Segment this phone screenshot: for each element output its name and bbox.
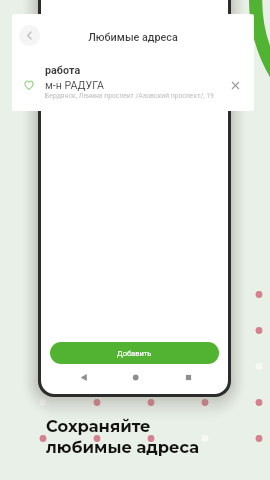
staticText: любимые адреса	[46, 437, 200, 457]
staticText: работа	[45, 64, 81, 77]
button[interactable]: Remove	[227, 77, 243, 93]
staticText: Добавить	[117, 349, 152, 358]
button[interactable]: Добавить	[50, 342, 219, 364]
button[interactable]: работа	[12, 58, 254, 104]
staticText: м-н РАДУГА	[45, 79, 104, 91]
button[interactable]: Back	[19, 25, 40, 46]
staticText: Бердянск, Ленина проспект /Азовский прос…	[45, 92, 214, 100]
staticText: Любимые адреса	[12, 31, 254, 44]
staticText: Сохраняйте	[46, 416, 151, 436]
